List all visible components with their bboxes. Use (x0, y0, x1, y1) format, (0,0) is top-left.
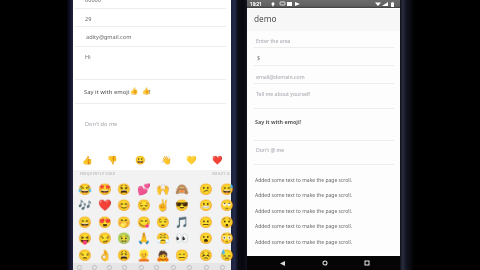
button[interactable]: Emoji (136, 247, 152, 263)
staticText: 💛 (186, 155, 197, 165)
button[interactable]: Home (318, 256, 332, 270)
staticText: Added some text to make the page scroll. (255, 208, 353, 215)
staticText: 🙏 (137, 232, 151, 245)
button[interactable]: Emoji (155, 247, 171, 263)
button[interactable]: Emoji (97, 230, 113, 246)
staticText: 🙌 (156, 183, 170, 196)
button[interactable]: Emoji category (184, 263, 194, 270)
button[interactable]: Emoji (77, 214, 93, 230)
button[interactable]: Emoji (219, 214, 235, 230)
button[interactable]: Emoji (219, 247, 235, 263)
button[interactable]: Emoji (219, 197, 235, 213)
button[interactable]: Emoji (198, 214, 214, 230)
staticText: 😫 (117, 183, 131, 196)
staticText: 🙄 (220, 199, 234, 212)
button[interactable]: Emoji category (168, 263, 178, 270)
button[interactable]: Emoji (174, 181, 190, 197)
staticText: 00000 (85, 0, 101, 4)
staticText: adity@gmail.com (86, 33, 132, 41)
staticText: Don't do me (85, 120, 118, 128)
staticText: 😔 (137, 199, 151, 212)
staticText: Enter the area (256, 37, 291, 44)
button[interactable]: Emoji (198, 247, 214, 263)
button[interactable]: Emoji (198, 197, 214, 213)
button[interactable]: Emoji suggestion (211, 153, 224, 166)
button[interactable]: Emoji (219, 181, 235, 197)
button[interactable]: Emoji (174, 230, 190, 246)
button[interactable]: Emoji category (136, 263, 146, 270)
button[interactable]: Emoji (219, 230, 235, 246)
staticText: Tell me about yourself (256, 90, 310, 97)
staticText: FREQUENTLY USED (80, 171, 116, 176)
button[interactable]: Emoji category (217, 263, 227, 270)
button[interactable]: Emoji category (151, 263, 161, 270)
button[interactable]: Emoji (198, 230, 214, 246)
staticText: 😋 (137, 216, 151, 229)
button[interactable]: Emoji (136, 181, 152, 197)
button[interactable]: Emoji (77, 197, 93, 213)
staticText: SMILEY & (212, 171, 232, 176)
button[interactable]: Emoji category (74, 263, 84, 270)
button[interactable]: Emoji (77, 230, 93, 246)
staticText: 😊 (117, 199, 131, 212)
staticText: ❤️ (212, 155, 223, 165)
staticText: 🎶 (78, 199, 92, 212)
button[interactable]: Emoji suggestion (134, 153, 147, 166)
staticText: 😀 (135, 155, 146, 165)
staticText: 👱 (137, 249, 151, 262)
staticText: 10:21 (250, 1, 262, 7)
button[interactable]: Emoji suggestion (185, 153, 198, 166)
button[interactable]: Emoji (116, 197, 132, 213)
staticText: Don't @ me (256, 146, 285, 153)
staticText: 👌 (98, 249, 112, 262)
button[interactable]: Emoji (116, 181, 132, 197)
button[interactable]: Emoji (155, 230, 171, 246)
button[interactable]: Emoji suggestion (160, 153, 173, 166)
button[interactable]: Emoji category (104, 263, 114, 270)
button[interactable]: Emoji (97, 214, 113, 230)
button[interactable]: Emoji category (119, 263, 129, 270)
button[interactable]: Emoji (174, 197, 190, 213)
staticText: 😑 (175, 249, 189, 262)
button[interactable]: Emoji (97, 197, 113, 213)
button[interactable]: Emoji (116, 247, 132, 263)
staticText: 😩 (117, 249, 131, 262)
button[interactable]: Emoji (198, 181, 214, 197)
button[interactable]: Emoji (97, 181, 113, 197)
staticText: 🎵 (175, 216, 189, 229)
staticText: 😯 (220, 216, 234, 229)
button[interactable]: Emoji (155, 181, 171, 197)
button[interactable]: Emoji (136, 197, 152, 213)
button[interactable]: Back (275, 256, 289, 270)
staticText: 👍 (130, 87, 138, 95)
staticText: 😣 (199, 249, 213, 262)
staticText: Added some text to make the page scroll. (255, 192, 353, 199)
button[interactable]: Emoji (174, 214, 190, 230)
button[interactable]: Emoji (136, 230, 152, 246)
button[interactable]: Emoji (155, 197, 171, 213)
button[interactable]: Emoji (136, 214, 152, 230)
staticText: 👋 (161, 155, 172, 165)
button[interactable]: Emoji category (89, 263, 99, 270)
button[interactable]: Emoji suggestion (106, 153, 119, 166)
staticText: Added some text to make the page scroll. (255, 239, 353, 246)
button[interactable]: Emoji (97, 247, 113, 263)
button[interactable]: Emoji (77, 181, 93, 197)
button[interactable]: Emoji category (201, 263, 211, 270)
button[interactable]: Emoji (116, 230, 132, 246)
staticText: 👍 (82, 155, 93, 165)
button[interactable]: Emoji (174, 247, 190, 263)
staticText: Hi (85, 53, 91, 61)
staticText: 🤩 (98, 183, 112, 196)
staticText: 😬 (199, 199, 213, 212)
staticText: 😄 (78, 216, 92, 229)
staticText: demo (254, 13, 277, 24)
button[interactable]: Emoji (116, 214, 132, 230)
button[interactable]: Emoji (77, 247, 93, 263)
button[interactable]: Emoji suggestion (81, 153, 94, 166)
staticText: 😓 (220, 249, 234, 262)
staticText: 😂 (78, 183, 92, 196)
staticText: 🙇 (156, 249, 170, 262)
button[interactable]: Recent apps (360, 256, 374, 270)
button[interactable]: Emoji (155, 214, 171, 230)
